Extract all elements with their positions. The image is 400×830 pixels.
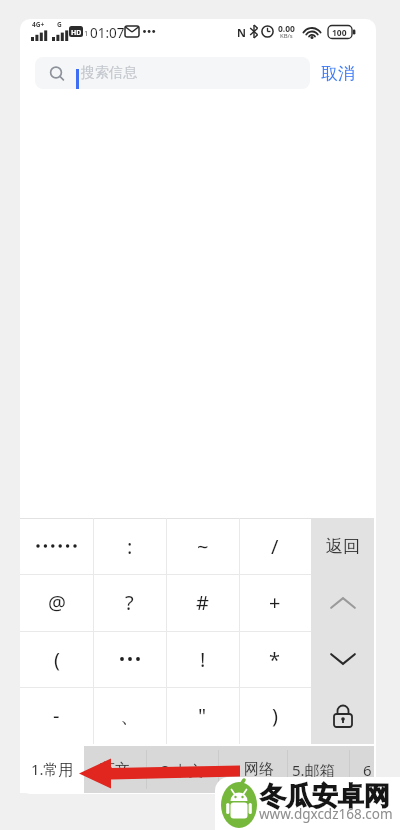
staticText: * [269,646,281,673]
staticText: 网络 [244,760,274,779]
button[interactable]: 英文 [84,746,146,793]
button[interactable] [311,631,374,687]
staticText: ! [200,646,206,673]
button[interactable]: ) [239,687,311,744]
staticText: 冬瓜安卓网 [260,780,390,813]
staticText: 0.00 [278,23,295,35]
staticText: + [269,589,281,616]
button[interactable] [311,574,374,631]
staticText: G [57,20,62,29]
staticText: 1.常用 [31,759,74,779]
staticText: ( [54,646,60,673]
button[interactable]: 1.常用 [20,745,84,793]
staticText: : [127,533,133,560]
staticText: 返回 [326,536,360,557]
staticText: - [53,702,60,729]
button[interactable]: ? [93,574,166,631]
button[interactable]: * [239,631,311,687]
staticText: 取消 [321,63,355,84]
button[interactable]: 返回 [311,518,374,574]
button[interactable]: ( [20,631,93,687]
staticText: 6 [363,760,372,780]
staticText: ? [125,589,134,616]
staticText: ~ [197,533,209,560]
staticText: 、 [120,703,140,728]
staticText: KB/s [280,32,293,40]
staticText: 搜索信息 [81,64,137,82]
button[interactable]: 6 [349,746,374,793]
staticText: # [196,589,209,616]
staticText: 100 [332,27,347,39]
staticText: www.dgxcdz168.com [259,805,393,823]
staticText: 01:07 [90,24,125,42]
staticText: N [237,25,246,40]
button[interactable]: @ [20,574,93,631]
button[interactable]: : [93,518,166,574]
staticText: " [198,702,207,729]
staticText: 5.邮箱 [292,760,335,780]
button[interactable]: ! [166,631,239,687]
staticText: 4G+ [32,20,45,29]
staticText: ) [272,702,278,729]
staticText: 1 [84,28,89,38]
button[interactable]: 搜索信息 [35,57,310,89]
button[interactable]: 、 [93,687,166,744]
button[interactable]: + [239,574,311,631]
button[interactable]: - [20,687,93,744]
staticText: 英文 [100,760,130,779]
staticText: @ [48,589,66,616]
button[interactable]: 取消 [315,57,360,89]
button[interactable] [20,518,93,574]
button[interactable]: ~ [166,518,239,574]
button[interactable]: / [239,518,311,574]
button[interactable] [311,687,374,744]
button[interactable]: # [166,574,239,631]
staticText: 3.中文 [161,760,204,780]
button[interactable]: 网络 [218,746,287,793]
staticText: HD [71,28,82,38]
button[interactable] [93,631,166,687]
button[interactable]: 3.中文 [146,746,218,793]
staticText: / [271,533,279,560]
button[interactable]: 5.邮箱 [287,746,349,793]
button[interactable]: " [166,687,239,744]
